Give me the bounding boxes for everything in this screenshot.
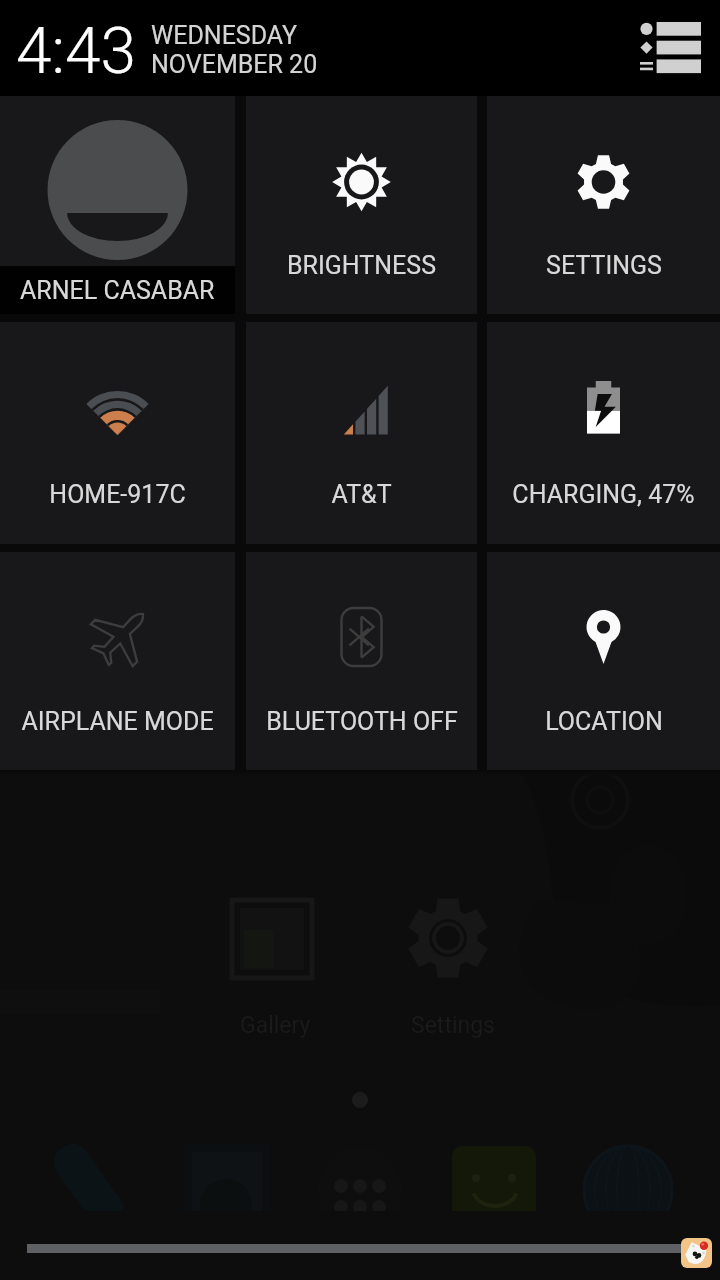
- staticText: 4:43: [16, 14, 136, 89]
- staticText: AIRPLANE MODE: [21, 707, 214, 736]
- button[interactable]: LOCATION: [487, 552, 720, 770]
- button[interactable]: BRIGHTNESS: [246, 96, 477, 314]
- button[interactable]: BLUETOOTH OFF: [246, 552, 477, 770]
- staticText: BRIGHTNESS: [287, 251, 436, 280]
- staticText: CHARGING, 47%: [512, 480, 695, 509]
- staticText: NOVEMBER 20: [151, 50, 318, 79]
- button[interactable]: SETTINGS: [487, 96, 720, 314]
- staticText: LOCATION: [545, 707, 663, 736]
- staticText: Settings: [411, 1012, 495, 1039]
- staticText: AT&T: [331, 480, 392, 509]
- button[interactable]: Notifications: [630, 13, 710, 84]
- staticText: HOME-917C: [49, 480, 186, 509]
- staticText: ARNEL CASABAR: [20, 276, 215, 305]
- staticText: BLUETOOTH OFF: [266, 707, 458, 736]
- staticText: SETTINGS: [546, 251, 662, 280]
- button[interactable]: HOME-917C: [0, 322, 235, 544]
- button[interactable]: Notes app: [681, 1238, 712, 1268]
- button[interactable]: AIRPLANE MODE: [0, 552, 235, 770]
- button[interactable]: CHARGING, 47%: [487, 322, 720, 544]
- button[interactable]: AT&T: [246, 322, 477, 544]
- staticText: WEDNESDAY: [151, 21, 298, 50]
- staticText: Gallery: [240, 1012, 311, 1039]
- button[interactable]: ARNEL CASABAR: [0, 96, 235, 314]
